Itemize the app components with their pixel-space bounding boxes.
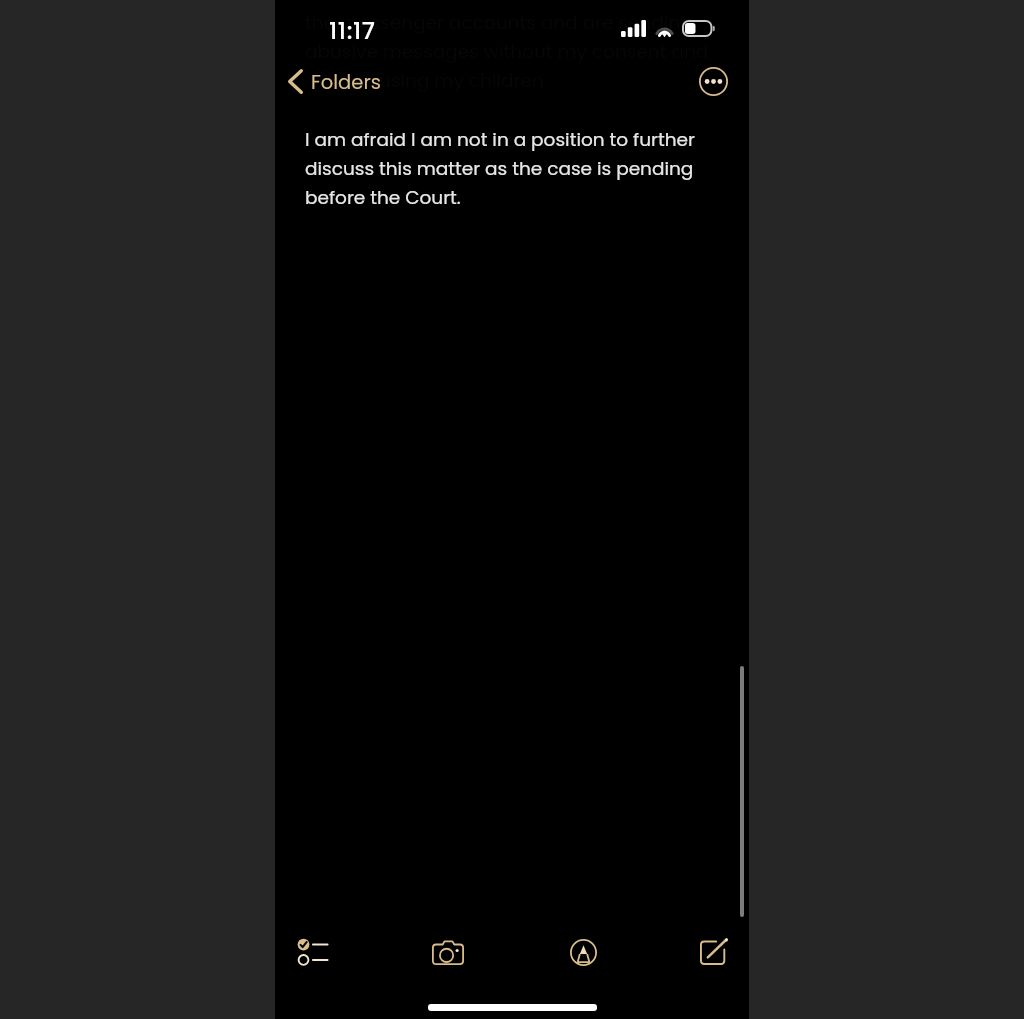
button[interactable]: I am afraid I am not in a position to fu… bbox=[275, 106, 749, 896]
button[interactable]: Camera bbox=[426, 930, 470, 974]
button[interactable]: Markup bbox=[561, 930, 605, 974]
staticText: I am afraid I am not in a position to fu… bbox=[305, 127, 703, 211]
button[interactable]: More options bbox=[692, 60, 734, 102]
staticText: using my children bbox=[379, 68, 544, 94]
button[interactable]: New note bbox=[691, 930, 735, 974]
staticText: 11:17 bbox=[329, 14, 376, 47]
button[interactable]: Checklist bbox=[290, 930, 334, 974]
staticText: the messenger accounts and are sending bbox=[305, 10, 693, 36]
button[interactable]: Folders bbox=[281, 62, 391, 101]
staticText: Folders bbox=[311, 69, 381, 96]
